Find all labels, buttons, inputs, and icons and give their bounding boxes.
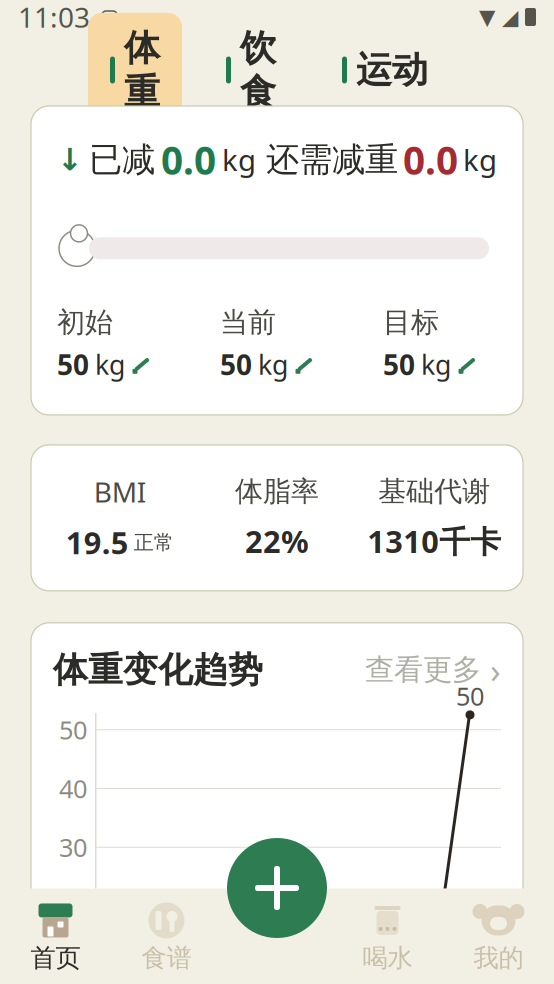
staticText: 查看更多: [365, 652, 481, 688]
staticText: 50: [220, 346, 252, 383]
staticText: kg: [95, 347, 125, 382]
button[interactable]: 体重: [88, 13, 182, 127]
staticText: 食谱: [141, 942, 191, 973]
staticText: 初始: [57, 305, 113, 340]
staticText: kg: [258, 347, 288, 382]
staticText: 50: [456, 679, 484, 713]
staticText: 20: [59, 889, 87, 923]
staticText: BMI: [94, 473, 146, 510]
staticText: 正常: [134, 530, 174, 555]
staticText: 22%: [245, 521, 309, 561]
staticText: 50: [383, 346, 415, 383]
staticText: kg: [222, 140, 256, 179]
staticText: 目标: [383, 305, 439, 340]
button[interactable]: Add record: [227, 838, 327, 938]
staticText: ›: [481, 647, 501, 693]
staticText: 0.0: [161, 134, 216, 185]
staticText: 首页: [30, 942, 80, 973]
button[interactable]: 50: [57, 346, 153, 383]
button[interactable]: 运动: [338, 35, 432, 105]
staticText: 11:03: [18, 0, 90, 36]
staticText: 还需减重: [266, 139, 398, 180]
staticText: 50: [57, 346, 89, 383]
button[interactable]: 体重变化趋势: [53, 647, 501, 693]
button[interactable]: 食谱: [111, 896, 222, 979]
staticText: 喝水: [362, 942, 412, 973]
staticText: 体重: [124, 26, 160, 114]
staticText: 体重变化趋势: [53, 649, 263, 691]
staticText: 0.0: [403, 134, 458, 185]
staticText: kg: [421, 347, 451, 382]
staticText: 基础代谢: [378, 474, 490, 509]
staticText: 饮食: [240, 26, 276, 114]
staticText: 已减: [89, 139, 155, 180]
staticText: ▼: [479, 5, 495, 29]
button[interactable]: 喝水: [332, 896, 443, 979]
staticText: 30: [59, 830, 87, 864]
staticText: 我的: [473, 942, 523, 973]
staticText: ◢: [502, 5, 518, 29]
button[interactable]: 50: [220, 346, 316, 383]
staticText: 运动: [356, 48, 428, 92]
staticText: 19.5: [66, 522, 129, 563]
staticText: 1310千卡: [367, 521, 501, 561]
button[interactable]: 首页: [0, 896, 111, 979]
staticText: 当前: [220, 305, 276, 340]
staticText: ↓: [57, 142, 83, 177]
button[interactable]: 50: [383, 346, 479, 383]
staticText: kg: [463, 140, 497, 179]
staticText: 50: [59, 713, 87, 746]
button[interactable]: 我的: [443, 896, 554, 979]
staticText: 体脂率: [235, 474, 319, 509]
button[interactable]: 饮食: [222, 13, 280, 127]
staticText: 40: [59, 772, 87, 805]
